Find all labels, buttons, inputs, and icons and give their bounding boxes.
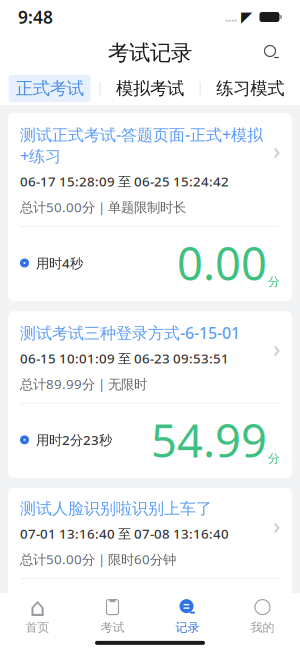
staticText: ◤ (241, 9, 252, 25)
staticText: 06-17 15:28:09 至 06-25 15:24:42 (20, 172, 229, 190)
staticText: 用时2分23秒 (36, 431, 112, 449)
staticText: 分 (268, 451, 280, 466)
staticText: 记录 (175, 620, 199, 635)
button[interactable]: 测试正式考试-答题页面-正式+模拟+练习 (8, 113, 292, 301)
staticText: 06-15 10:01:09 至 06-23 09:53:51 (20, 349, 229, 367)
staticText: › (273, 509, 280, 541)
staticText: 测试考试三种登录方式-6-15-01 (20, 322, 240, 343)
staticText: 我的 (250, 620, 274, 635)
staticText: 首页 (25, 620, 49, 635)
staticText: 测试人脸识别啦识别上车了 (20, 499, 212, 519)
staticText: 54.99 (151, 410, 267, 470)
staticText: 正式考试 (16, 78, 84, 99)
button[interactable]: 搜索 (254, 35, 290, 71)
staticText: 总计89.99分 | 无限时 (20, 375, 147, 393)
staticText: 40.00 (151, 585, 267, 645)
button[interactable]: 我的 (225, 597, 300, 635)
staticText: 07-01 13:16:40 至 07-08 13:16:40 (20, 525, 229, 542)
button[interactable]: 练习模式 (201, 75, 300, 102)
staticText: 用时4秒 (36, 254, 83, 272)
button[interactable]: 记录 (150, 597, 225, 635)
staticText: 考试记录 (108, 40, 192, 66)
staticText: 模拟考试 (116, 78, 184, 99)
staticText: 测试正式考试-答题页面-正式+模拟+练习 (20, 124, 263, 166)
staticText: .... (225, 9, 237, 25)
staticText: › (273, 134, 280, 166)
staticText: 分 (268, 274, 280, 289)
button[interactable]: ⌂ (0, 597, 75, 635)
staticText: 考试 (100, 620, 124, 635)
staticText: 0.00 (177, 233, 267, 293)
staticText: 总计50.00分 | 限时60分钟 (20, 550, 176, 568)
button[interactable]: 测试考试三种登录方式-6-15-01 (8, 311, 292, 478)
button[interactable]: 正式考试 (0, 75, 99, 102)
staticText: ⌂ (29, 593, 45, 622)
staticText: › (273, 332, 280, 364)
button[interactable]: 模拟考试 (100, 75, 200, 102)
staticText: 练习模式 (216, 78, 284, 99)
button[interactable]: 测试人脸识别啦识别上车了 (8, 488, 292, 649)
staticText: 9:48 (18, 5, 53, 28)
staticText: 用时21秒 (36, 606, 91, 624)
staticText: 总计50.00分 | 单题限制时长 (20, 198, 186, 216)
staticText: 分 (268, 626, 280, 641)
button[interactable]: 考试 (75, 597, 150, 635)
